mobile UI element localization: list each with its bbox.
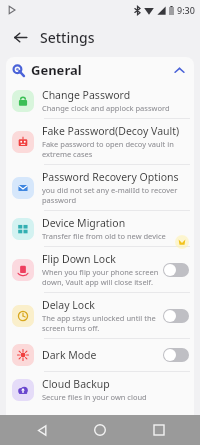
- staticText: When you flip your phone screen down, Va…: [42, 267, 159, 287]
- staticText: Fake Password(Decoy Vault): [42, 124, 180, 138]
- staticText: The app stays unlocked until the screen …: [42, 313, 159, 333]
- staticText: Dark Mode: [42, 348, 97, 362]
- staticText: Cloud Backup: [42, 377, 110, 391]
- button[interactable]: Home: [83, 415, 117, 445]
- button[interactable]: Recents: [142, 415, 176, 445]
- staticText: Change clock and applock password: [42, 103, 170, 113]
- button[interactable]: Dark Mode toggle: [163, 348, 189, 362]
- staticText: Password Recovery Options: [42, 170, 179, 184]
- button[interactable]: Device Migration: [6, 211, 194, 246]
- button[interactable]: Flip Down Lock toggle: [163, 263, 189, 277]
- button[interactable]: Delay Lock toggle: [163, 309, 189, 323]
- button[interactable]: Back: [25, 415, 59, 445]
- staticText: Device Migration: [42, 216, 126, 230]
- button[interactable]: Delay Lock: [6, 293, 194, 338]
- staticText: Fake password to open decoy vault in ext…: [42, 139, 189, 159]
- button[interactable]: Change Password: [6, 83, 194, 118]
- button[interactable]: Collapse: [170, 61, 188, 79]
- button[interactable]: Back: [6, 23, 34, 51]
- staticText: 9:30: [177, 4, 195, 16]
- staticText: Delay Lock: [42, 298, 95, 312]
- button[interactable]: Flip Down Lock: [6, 247, 194, 292]
- staticText: Change Password: [42, 88, 131, 102]
- staticText: Secure files in your own cloud: [42, 392, 147, 402]
- staticText: Transfer file from old to new device: [42, 231, 166, 241]
- staticText: Flip Down Lock: [42, 252, 116, 266]
- button[interactable]: Cloud Backup: [6, 372, 194, 407]
- button[interactable]: Dark Mode: [6, 339, 194, 371]
- staticText: Settings: [40, 28, 95, 47]
- button[interactable]: Password Recovery Options: [6, 165, 194, 210]
- button[interactable]: Fake Password(Decoy Vault): [6, 119, 194, 164]
- button[interactable]: General: [6, 57, 194, 83]
- staticText: General: [31, 61, 82, 79]
- staticText: you did not set any e-mailId to recover …: [42, 185, 189, 205]
